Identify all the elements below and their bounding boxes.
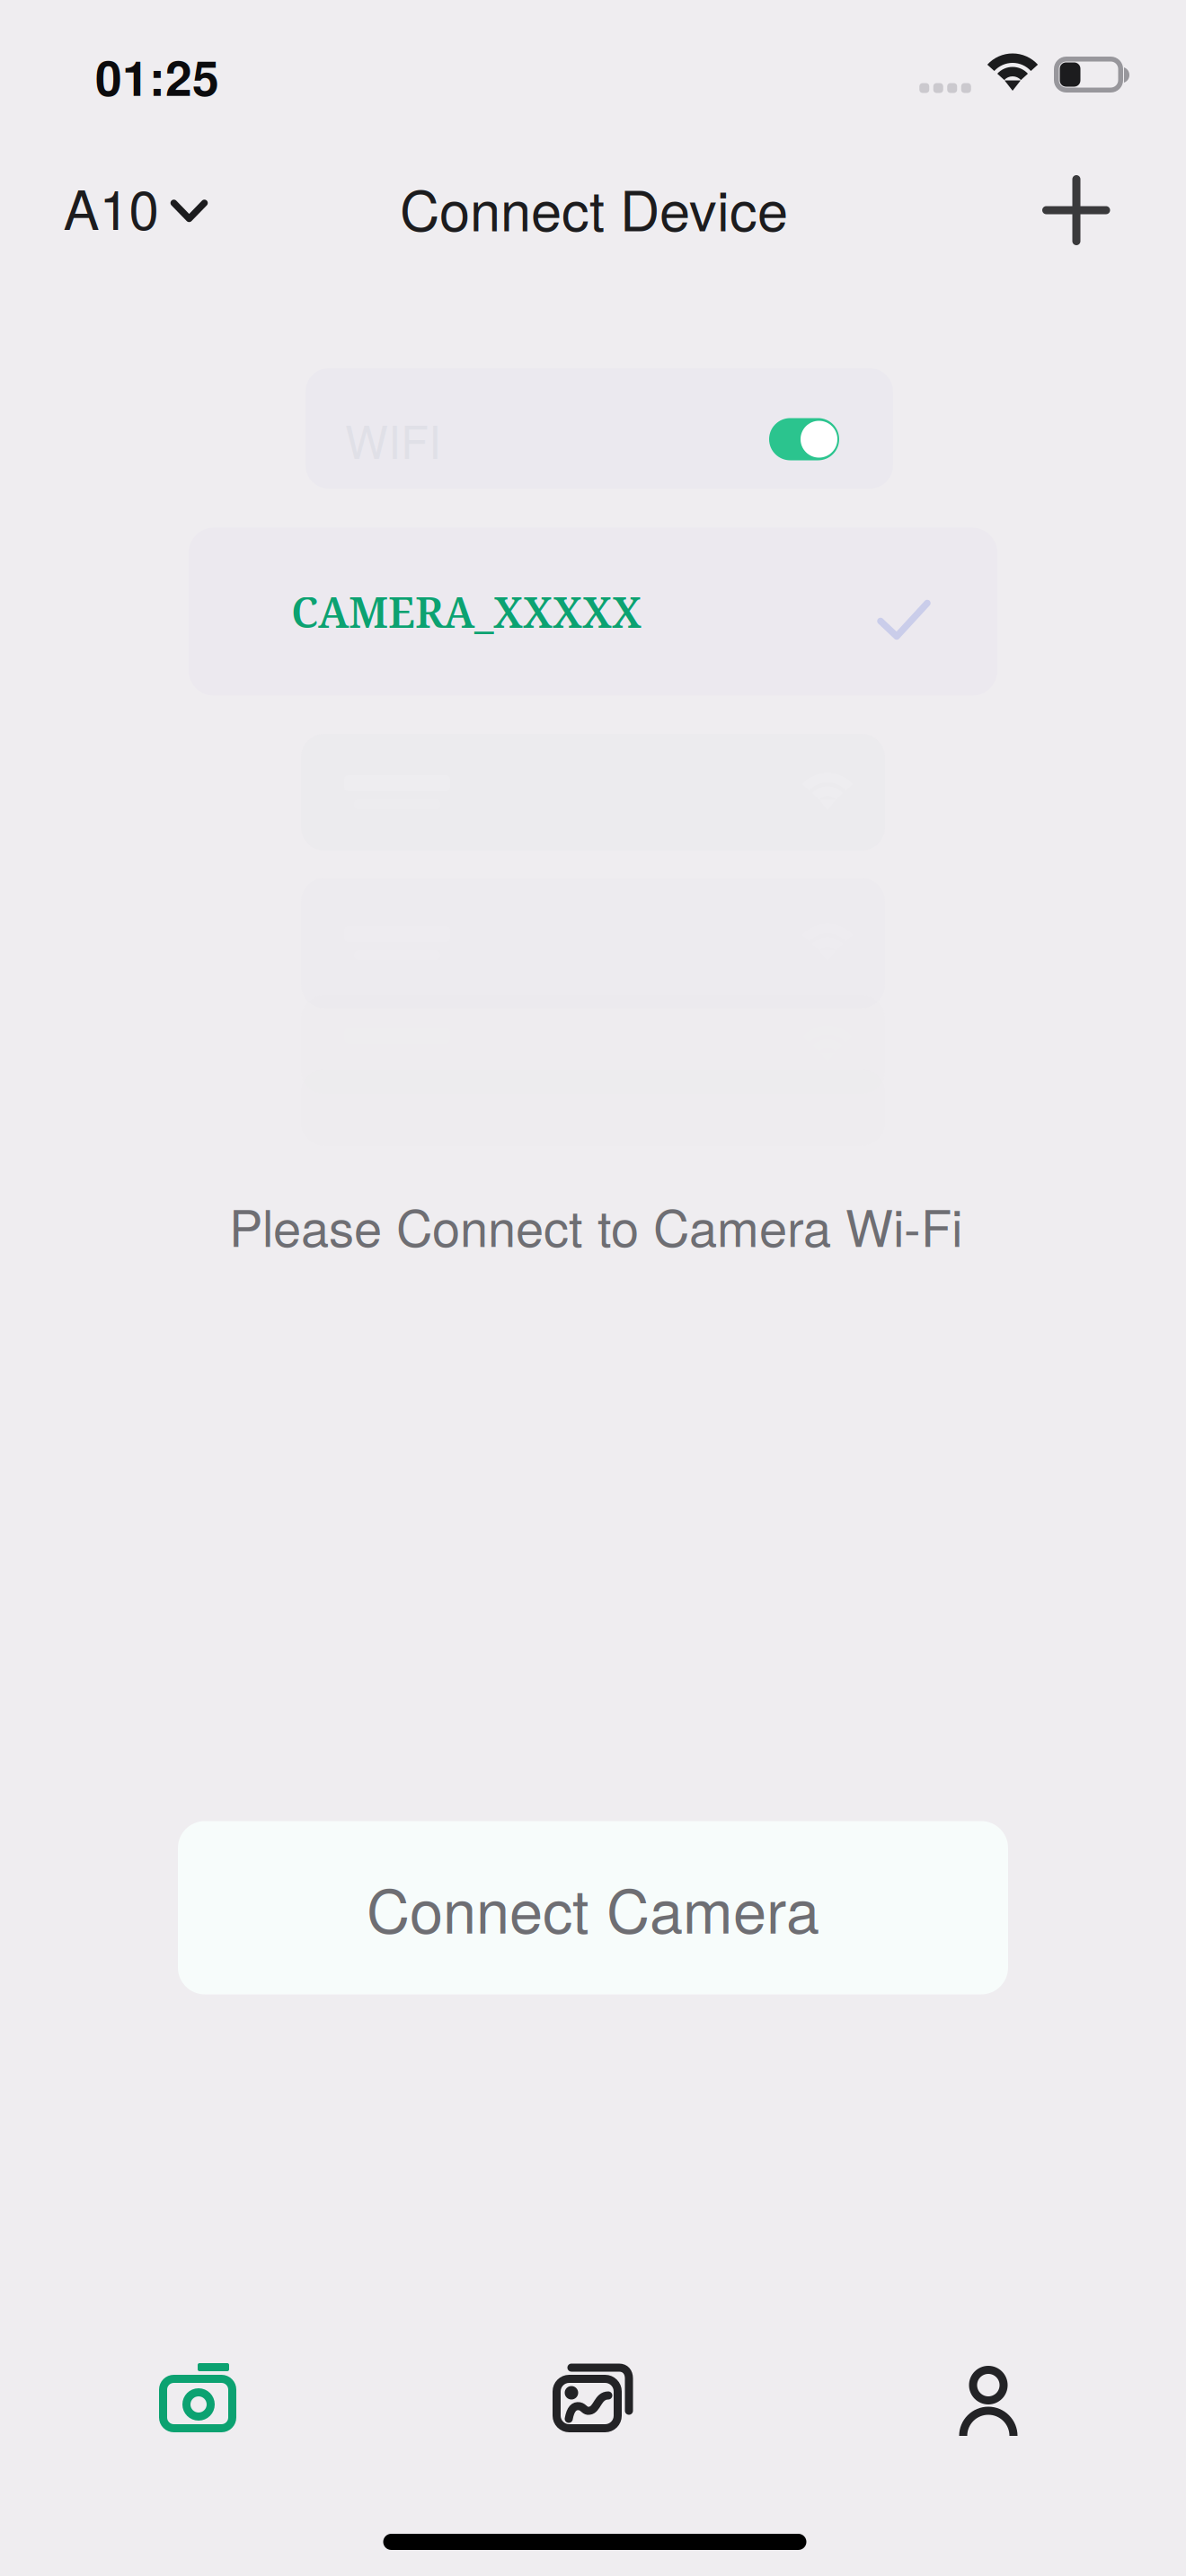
staticText: A10 (63, 168, 159, 245)
button[interactable]: A10 (0, 156, 233, 257)
button[interactable]: Gallery (395, 2331, 791, 2466)
staticText: CAMERA_XXXXX (291, 583, 642, 640)
staticText: 01:25 (95, 42, 219, 111)
staticText: Connect Camera (367, 1865, 819, 1951)
staticText: WIFI (345, 407, 441, 472)
button[interactable]: CAMERA_XXXXX (189, 528, 997, 696)
button[interactable]: Profile (791, 2331, 1186, 2466)
button[interactable]: Camera (0, 2331, 395, 2466)
staticText: Please Connect to Camera Wi-Fi (229, 1189, 962, 1261)
button[interactable]: Connect Camera (178, 1821, 1008, 1994)
staticText: Connect Device (400, 168, 788, 247)
button[interactable]: Add device (1009, 158, 1144, 262)
